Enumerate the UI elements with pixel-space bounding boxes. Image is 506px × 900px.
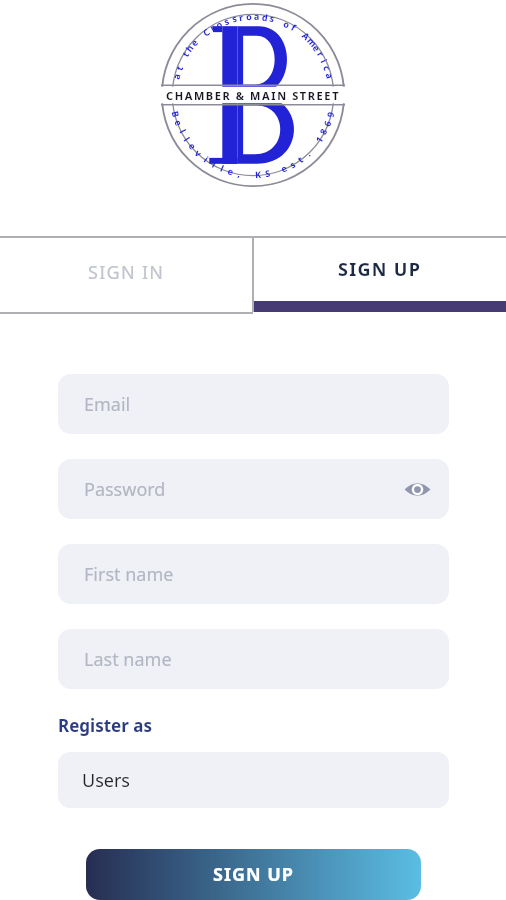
- button[interactable]: Last name: [58, 629, 449, 689]
- staticText: SIGN IN: [88, 260, 165, 285]
- staticText: i: [202, 153, 211, 165]
- button[interactable]: Email: [58, 374, 449, 434]
- staticText: o: [214, 17, 224, 31]
- staticText: i: [318, 57, 330, 65]
- staticText: m: [305, 35, 320, 49]
- button[interactable]: Password: [58, 459, 449, 519]
- staticText: Register as: [58, 714, 152, 737]
- staticText: r: [238, 11, 245, 23]
- staticText: s: [231, 12, 238, 24]
- staticText: S: [264, 167, 271, 179]
- staticText: Password: [84, 477, 166, 502]
- staticText: CHAMBER & MAIN STREET: [166, 88, 341, 103]
- staticText: C: [200, 25, 212, 39]
- staticText: SIGN UP: [338, 257, 422, 282]
- button[interactable]: SIGN UP: [254, 238, 506, 312]
- staticText: t: [179, 49, 191, 59]
- staticText: Email: [84, 392, 131, 417]
- staticText: s: [269, 12, 276, 24]
- staticText: .: [302, 148, 313, 158]
- staticText: l: [177, 127, 189, 135]
- staticText: h: [182, 42, 196, 54]
- staticText: r: [315, 49, 328, 59]
- staticText: Last name: [84, 647, 172, 672]
- staticText: First name: [84, 562, 174, 587]
- button[interactable]: Users: [58, 752, 449, 808]
- staticText: 1: [312, 133, 326, 145]
- staticText: t: [295, 153, 305, 165]
- staticText: Users: [82, 768, 130, 793]
- staticText: ,: [237, 167, 242, 179]
- staticText: e: [226, 164, 236, 178]
- staticText: l: [210, 158, 219, 170]
- staticText: e: [279, 161, 289, 175]
- staticText: A: [300, 29, 313, 43]
- staticText: a: [254, 10, 260, 22]
- staticText: SIGN UP: [213, 862, 295, 887]
- staticText: e: [172, 118, 186, 128]
- staticText: 6: [320, 118, 334, 128]
- staticText: f: [289, 21, 299, 33]
- staticText: r: [207, 21, 218, 33]
- staticText: 8: [316, 126, 330, 136]
- staticText: e: [310, 42, 324, 54]
- staticText: t: [173, 64, 185, 72]
- staticText: d: [261, 11, 269, 23]
- staticText: e: [187, 36, 200, 48]
- staticText: a: [169, 72, 183, 80]
- staticText: K: [255, 168, 261, 180]
- staticText: a: [323, 72, 337, 80]
- staticText: o: [282, 17, 292, 31]
- staticText: 9: [323, 110, 337, 118]
- staticText: l: [182, 134, 193, 144]
- staticText: e: [186, 140, 199, 152]
- staticText: v: [193, 147, 205, 159]
- button[interactable]: SIGN UP: [86, 849, 421, 900]
- staticText: c: [321, 64, 334, 72]
- staticText: s: [222, 14, 231, 27]
- button[interactable]: SIGN IN: [0, 238, 252, 312]
- staticText: s: [287, 158, 298, 170]
- staticText: B: [169, 110, 183, 118]
- button[interactable]: First name: [58, 544, 449, 604]
- button[interactable]: Show password: [399, 471, 435, 507]
- staticText: l: [219, 162, 226, 174]
- staticText: o: [246, 10, 252, 22]
